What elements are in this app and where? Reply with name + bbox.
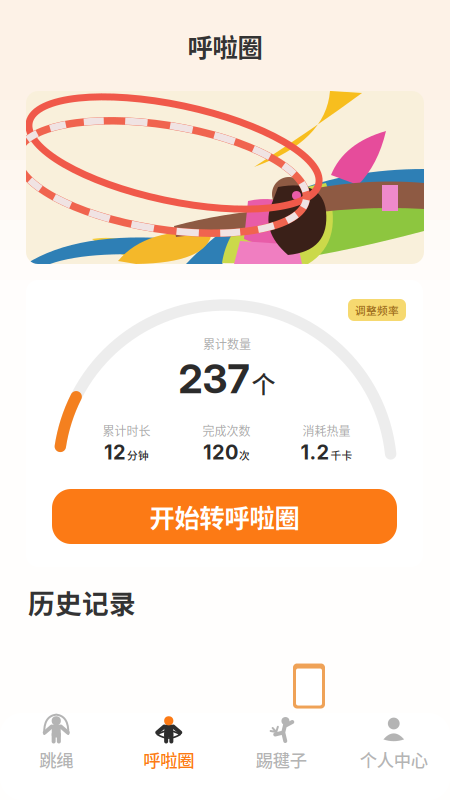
staticText: 237 bbox=[178, 354, 249, 403]
staticText: 调整频率 bbox=[355, 302, 399, 318]
button[interactable]: 开始转呼啦圈 bbox=[52, 489, 397, 544]
staticText: 千卡 bbox=[330, 447, 352, 462]
staticText: 跳绳 bbox=[39, 747, 73, 772]
staticText: 呼啦圈 bbox=[187, 28, 262, 64]
staticText: 分钟 bbox=[127, 447, 149, 462]
staticText: 踢毽子 bbox=[256, 747, 307, 772]
staticText: 1.2 bbox=[300, 440, 329, 464]
button[interactable]: 跳绳 bbox=[0, 713, 112, 800]
staticText: 暂无打卡记录 bbox=[180, 717, 270, 739]
staticText: 完成次数 bbox=[202, 422, 250, 439]
staticText: 120 bbox=[203, 440, 238, 464]
button[interactable]: 踢毽子 bbox=[225, 713, 337, 800]
staticText: 开始转呼啦圈 bbox=[149, 498, 299, 535]
button[interactable]: 呼啦圈 bbox=[112, 713, 225, 800]
staticText: 累计数量 bbox=[203, 335, 251, 352]
button[interactable]: 调整频率 bbox=[348, 299, 406, 321]
staticText: 次 bbox=[239, 447, 250, 462]
staticText: 历史记录 bbox=[28, 583, 136, 621]
staticText: 12 bbox=[104, 440, 126, 464]
staticText: 呼啦圈 bbox=[143, 747, 194, 772]
button[interactable]: 个人中心 bbox=[337, 713, 450, 800]
staticText: 个 bbox=[251, 365, 275, 400]
staticText: 个人中心 bbox=[360, 747, 428, 772]
staticText: 累计时长 bbox=[102, 422, 150, 439]
staticText: 消耗热量 bbox=[302, 422, 350, 439]
